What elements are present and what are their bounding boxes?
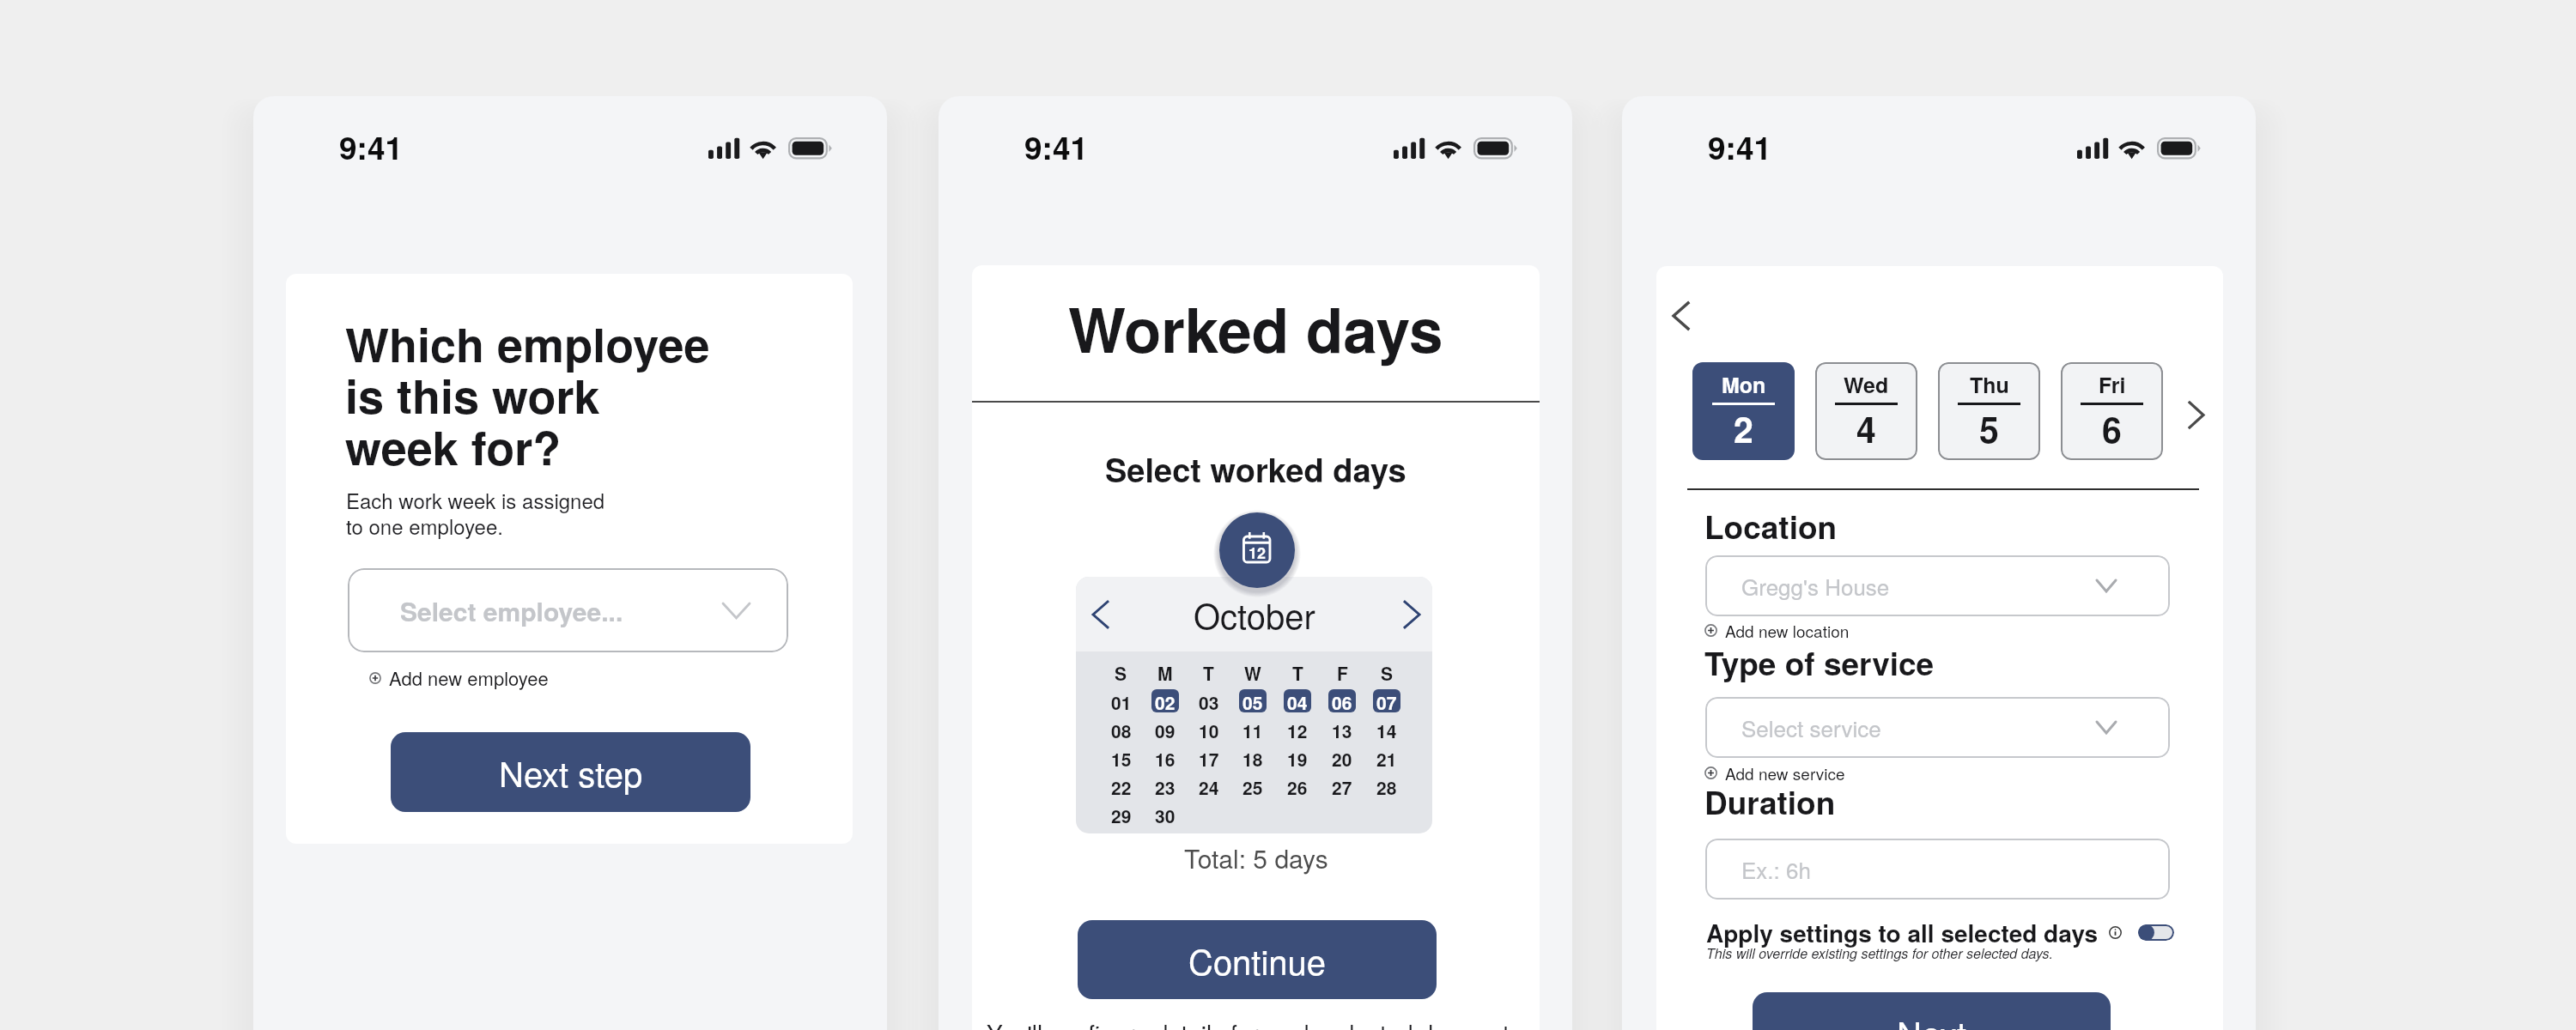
button[interactable]: Ex.: 6h (1705, 839, 2170, 900)
button[interactable]: Next step (391, 732, 750, 812)
staticText: Thu (1970, 369, 2009, 400)
button[interactable]: 30 (1151, 803, 1179, 826)
button[interactable]: 08 (1108, 718, 1135, 741)
staticText: 07 (1376, 689, 1397, 712)
staticText: 16 (1155, 746, 1176, 769)
button[interactable]: Back (1657, 293, 1704, 339)
button[interactable]: More days (2181, 399, 2212, 430)
staticText: 9:41 (1024, 124, 1089, 169)
staticText: 6 (2102, 403, 2122, 454)
staticText: Add new employee (389, 664, 549, 692)
button[interactable]: 04 (1284, 689, 1311, 712)
staticText: 12 (1287, 718, 1308, 741)
button[interactable]: 16 (1151, 746, 1179, 769)
staticText: 11 (1242, 718, 1263, 741)
button[interactable]: 14 (1373, 718, 1400, 741)
staticText: Next (1897, 1008, 1967, 1030)
button[interactable]: 06 (1328, 689, 1356, 712)
staticText: 5 (1979, 403, 1999, 454)
button[interactable]: 23 (1151, 774, 1179, 797)
staticText: 20 (1332, 746, 1352, 769)
button[interactable]: 02 (1151, 689, 1179, 712)
button[interactable]: 21 (1373, 746, 1400, 769)
staticText: Fri (2099, 369, 2126, 400)
staticText: 2 (1734, 403, 1753, 454)
staticText: 19 (1287, 746, 1308, 769)
staticText: S (1381, 660, 1394, 686)
button[interactable]: 12 (1284, 718, 1311, 741)
button[interactable]: Gregg's House (1705, 555, 2170, 616)
button[interactable]: 29 (1108, 803, 1135, 826)
button[interactable]: Select service (1705, 697, 2170, 758)
button[interactable]: 18 (1239, 746, 1267, 769)
button[interactable]: Add new employee (369, 664, 549, 692)
button[interactable]: Add new location (1704, 619, 1850, 642)
button[interactable]: 28 (1373, 774, 1400, 797)
button[interactable]: 15 (1108, 746, 1135, 769)
button[interactable]: Continue (1078, 920, 1437, 999)
staticText: 9:41 (339, 124, 404, 169)
staticText: 4 (1856, 403, 1876, 454)
staticText: F (1337, 660, 1348, 686)
button[interactable]: Wed (1815, 362, 1917, 460)
staticText: 25 (1242, 774, 1263, 797)
staticText: 22 (1111, 774, 1132, 797)
staticText: 09 (1155, 718, 1176, 741)
button[interactable]: 26 (1284, 774, 1311, 797)
staticText: 21 (1376, 746, 1397, 769)
button[interactable]: 11 (1239, 718, 1267, 741)
button[interactable]: 09 (1151, 718, 1179, 741)
staticText: Add new service (1725, 761, 1845, 785)
staticText: 04 (1287, 689, 1308, 712)
button[interactable]: 20 (1328, 746, 1356, 769)
button[interactable]: Pick dates (1219, 512, 1295, 588)
button[interactable]: Add new service (1704, 761, 1845, 785)
button[interactable]: Previous month (1081, 596, 1119, 633)
staticText: 05 (1242, 689, 1263, 712)
button[interactable]: 27 (1328, 774, 1356, 797)
staticText: Select service (1741, 712, 1881, 743)
staticText: Type of service (1704, 639, 1935, 685)
button[interactable]: 19 (1284, 746, 1311, 769)
staticText: T (1203, 660, 1214, 686)
staticText: 26 (1287, 774, 1308, 797)
staticText: Select worked days (1105, 445, 1406, 492)
button[interactable]: 07 (1373, 689, 1400, 712)
button[interactable]: Next month (1393, 596, 1431, 633)
staticText: 17 (1199, 746, 1219, 769)
staticText: 23 (1155, 774, 1176, 797)
button[interactable]: 13 (1328, 718, 1356, 741)
button[interactable]: 25 (1239, 774, 1267, 797)
button[interactable]: 22 (1108, 774, 1135, 797)
button[interactable]: 03 (1195, 689, 1223, 712)
staticText: Duration (1704, 779, 1836, 824)
button[interactable]: 24 (1195, 774, 1223, 797)
button[interactable]: Fri (2061, 362, 2163, 460)
staticText: Location (1704, 503, 1838, 548)
staticText: 29 (1111, 803, 1132, 826)
staticText: 30 (1155, 803, 1176, 826)
button[interactable]: Thu (1938, 362, 2040, 460)
staticText: Wed (1844, 369, 1889, 400)
staticText: Which employee is this work week for? (345, 310, 710, 480)
button[interactable]: Next (1753, 992, 2111, 1030)
button[interactable]: 01 (1108, 689, 1135, 712)
staticText: 9:41 (1708, 124, 1772, 169)
staticText: 15 (1111, 746, 1132, 769)
button[interactable]: Apply settings toggle (2138, 924, 2174, 941)
staticText: Gregg's House (1741, 570, 1890, 602)
staticText: 10 (1199, 718, 1219, 741)
staticText: Select employee... (400, 592, 623, 629)
staticText: 02 (1155, 689, 1176, 712)
staticText: 14 (1376, 718, 1397, 741)
staticText: 13 (1332, 718, 1352, 741)
staticText: T (1292, 660, 1303, 686)
button[interactable]: 05 (1239, 689, 1267, 712)
button[interactable]: Mon (1692, 362, 1795, 460)
staticText: 18 (1242, 746, 1263, 769)
button[interactable]: 10 (1195, 718, 1223, 741)
staticText: 01 (1111, 689, 1132, 712)
button[interactable]: Select employee... (348, 568, 788, 652)
button[interactable]: 17 (1195, 746, 1223, 769)
staticText: 03 (1199, 689, 1219, 712)
